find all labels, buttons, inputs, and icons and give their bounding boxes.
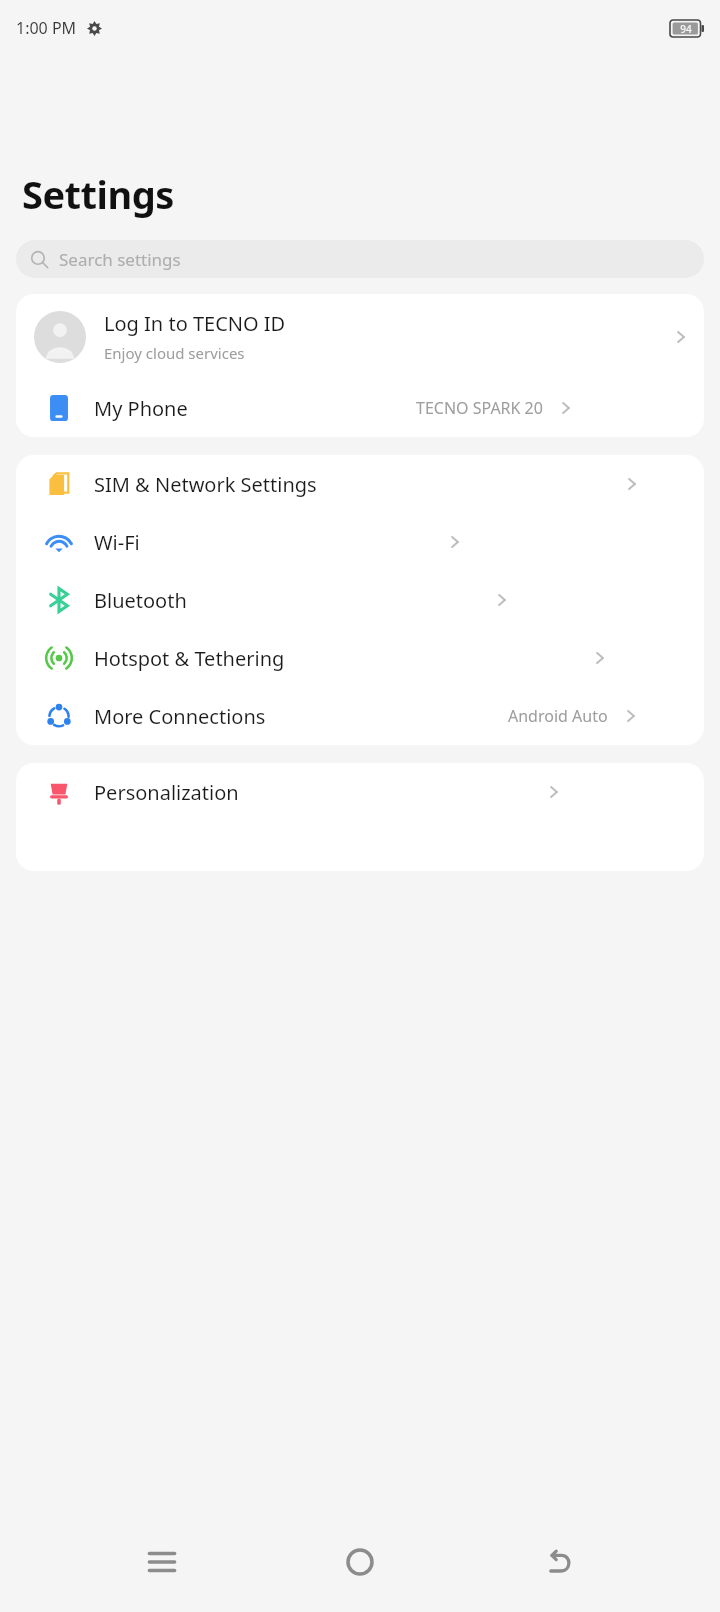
button[interactable]: Log In to TECNO ID [16, 294, 704, 379]
staticText: 1:00 PM [16, 17, 77, 39]
button[interactable]: Home [324, 1526, 396, 1598]
staticText: More Connections [94, 703, 266, 730]
staticText: Search settings [59, 248, 181, 271]
button[interactable]: Recent apps [126, 1526, 198, 1598]
staticText: Personalization [94, 779, 239, 806]
staticText: TECNO SPARK 20 [416, 397, 543, 419]
staticText: Wi-Fi [94, 529, 140, 556]
button[interactable]: SIM & Network Settings [16, 455, 704, 513]
staticText: Enjoy cloud services [104, 343, 245, 363]
staticText: SIM & Network Settings [94, 471, 317, 498]
staticText: 94 [680, 22, 692, 36]
staticText: Android Auto [508, 705, 608, 727]
button[interactable]: Bluetooth [16, 571, 704, 629]
staticText: Bluetooth [94, 587, 187, 614]
staticText: Log In to TECNO ID [104, 310, 286, 337]
button[interactable]: My Phone [16, 379, 704, 437]
button[interactable]: Wi-Fi [16, 513, 704, 571]
staticText: My Phone [94, 395, 188, 422]
button[interactable]: Hotspot & Tethering [16, 629, 704, 687]
button[interactable]: More Connections [16, 687, 704, 745]
button[interactable]: Search settings [16, 240, 704, 278]
staticText: Hotspot & Tethering [94, 645, 285, 672]
button[interactable]: Back [522, 1526, 594, 1598]
staticText: Settings [22, 168, 174, 220]
button[interactable]: Personalization [16, 763, 704, 821]
